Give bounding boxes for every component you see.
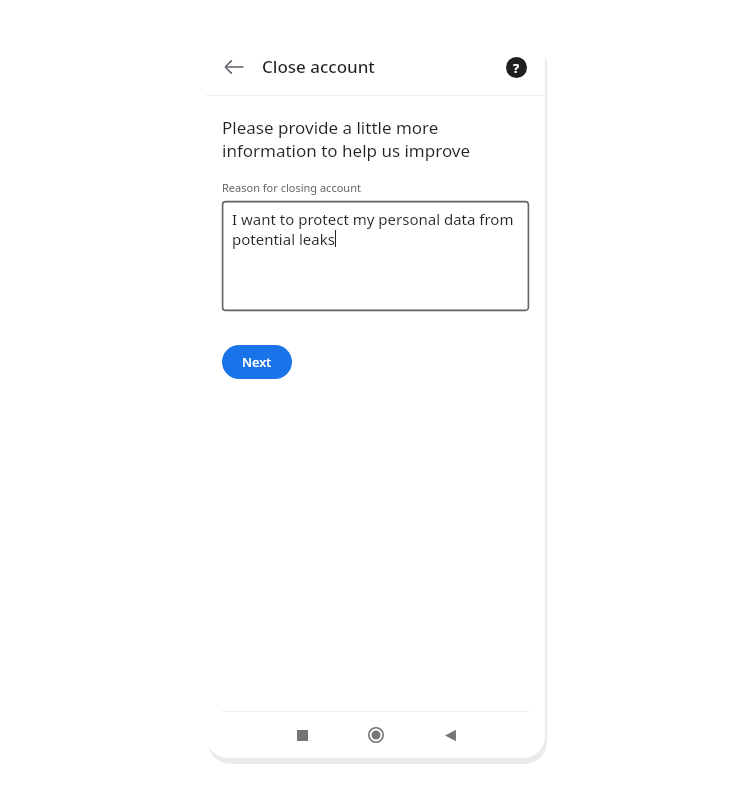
button[interactable]: Help (499, 50, 533, 84)
button[interactable]: I want to protect my personal data from (222, 201, 529, 311)
button[interactable]: Back (427, 712, 473, 758)
button[interactable]: Recent apps (279, 712, 325, 758)
staticText: Please provide a little more information… (222, 116, 529, 162)
button[interactable]: Next (222, 345, 292, 379)
staticText: I want to protect my personal data from (232, 209, 514, 229)
staticText: ? (513, 59, 520, 77)
staticText: Close account (262, 55, 375, 78)
staticText: potential leaks (232, 229, 335, 249)
button[interactable]: Back (214, 47, 254, 87)
button[interactable]: Home (353, 712, 399, 758)
staticText: Reason for closing account (222, 180, 361, 195)
staticText: Next (242, 353, 272, 371)
